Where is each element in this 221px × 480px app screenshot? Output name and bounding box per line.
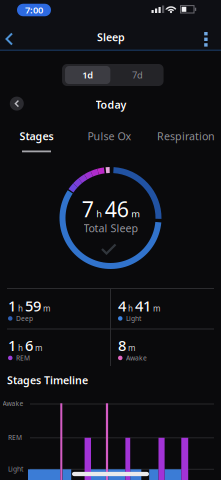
button[interactable]: 7d bbox=[0, 0, 221, 480]
staticText: 7d bbox=[132, 69, 143, 81]
staticText: 1 bbox=[8, 335, 16, 355]
staticText: Respiration bbox=[157, 129, 215, 143]
button[interactable]: More options bbox=[0, 0, 221, 480]
staticText: 41 bbox=[135, 296, 151, 315]
staticText: Light bbox=[126, 314, 141, 323]
staticText: h bbox=[128, 303, 133, 314]
staticText: Stages bbox=[19, 129, 53, 143]
staticText: Awake bbox=[126, 353, 147, 362]
button[interactable]: 1d bbox=[0, 0, 221, 480]
staticText: 46 bbox=[105, 195, 129, 223]
staticText: Deep bbox=[16, 314, 33, 323]
staticText: 59 bbox=[25, 296, 41, 315]
staticText: 1d bbox=[82, 69, 93, 81]
staticText: m bbox=[153, 303, 160, 314]
staticText: Light bbox=[8, 464, 23, 473]
staticText: m bbox=[131, 207, 140, 220]
staticText: h bbox=[96, 207, 102, 220]
staticText: Awake bbox=[2, 399, 23, 408]
staticText: 4 bbox=[118, 296, 126, 315]
staticText: REM bbox=[8, 433, 22, 442]
button[interactable]: Previous day bbox=[0, 0, 221, 480]
staticText: 8 bbox=[118, 335, 126, 355]
button[interactable]: Stages bbox=[0, 0, 221, 480]
staticText: Pulse Ox bbox=[87, 129, 131, 143]
button[interactable]: Pulse Ox bbox=[0, 0, 221, 480]
staticText: 6 bbox=[25, 335, 33, 355]
staticText: Stages Timeline bbox=[7, 373, 88, 387]
staticText: m bbox=[35, 342, 42, 353]
staticText: Today bbox=[95, 97, 126, 112]
staticText: 1 bbox=[8, 296, 16, 315]
button[interactable]: Respiration bbox=[0, 0, 221, 480]
staticText: h bbox=[18, 342, 23, 353]
staticText: m bbox=[43, 303, 50, 314]
staticText: REM bbox=[16, 353, 30, 362]
staticText: m bbox=[128, 342, 135, 353]
staticText: h bbox=[18, 303, 23, 314]
staticText: Total Sleep bbox=[83, 221, 138, 235]
staticText: 7 bbox=[82, 195, 94, 223]
staticText: Sleep bbox=[97, 30, 125, 44]
button[interactable]: Back bbox=[0, 0, 221, 480]
staticText: 7:00 bbox=[25, 4, 43, 16]
